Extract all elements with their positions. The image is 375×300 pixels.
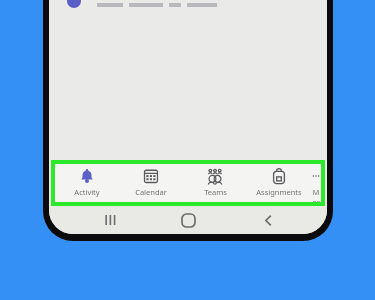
button[interactable]: Calendar [119,164,183,202]
staticText: Assignments [256,187,302,197]
button[interactable]: Activity [55,164,119,202]
button[interactable]: Home [168,206,208,234]
button[interactable]: Assignments [247,164,311,202]
button[interactable]: Recent apps [89,206,129,234]
button[interactable]: Back [248,206,288,234]
staticText: Calendar [135,187,167,197]
staticText: Activity [74,187,100,197]
staticText: Teams [204,187,227,197]
staticText: More [311,187,321,202]
button[interactable]: Teams [183,164,247,202]
button[interactable]: More [311,164,321,202]
